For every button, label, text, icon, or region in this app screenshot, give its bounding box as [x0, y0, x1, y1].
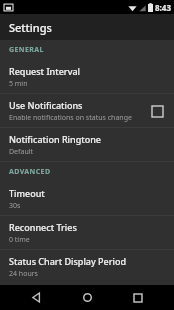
button[interactable]: Home [72, 285, 102, 310]
staticText: Reconnect Tries [9, 221, 77, 233]
button[interactable]: Notification Ringtone [0, 128, 174, 161]
staticText: 24 hours [9, 269, 38, 279]
staticText: GENERAL [9, 45, 44, 55]
staticText: Timeout [9, 187, 45, 199]
staticText: Status Chart Display Period [9, 255, 127, 267]
button[interactable]: Use Notifications [0, 94, 174, 127]
staticText: 0 time [9, 235, 30, 245]
staticText: 8:43 [155, 2, 171, 13]
staticText: Default [9, 147, 34, 157]
button[interactable]: Recent apps [123, 285, 153, 310]
staticText: Use Notifications [9, 99, 83, 111]
button[interactable]: Back [21, 285, 51, 310]
staticText: Request Interval [9, 65, 80, 77]
button[interactable]: Timeout [0, 182, 174, 215]
button[interactable]: Status Chart Display Period [0, 250, 174, 283]
staticText: 30s [9, 201, 21, 211]
staticText: Settings [9, 20, 52, 35]
button[interactable]: Use Notifications toggle [148, 102, 166, 120]
button[interactable]: Request Interval [0, 60, 174, 93]
staticText: Enable notifications on status change [9, 113, 132, 123]
button[interactable]: Reconnect Tries [0, 216, 174, 249]
staticText: ADVANCED [9, 167, 51, 177]
staticText: Notification Ringtone [9, 133, 102, 145]
staticText: 5 min [9, 79, 28, 89]
